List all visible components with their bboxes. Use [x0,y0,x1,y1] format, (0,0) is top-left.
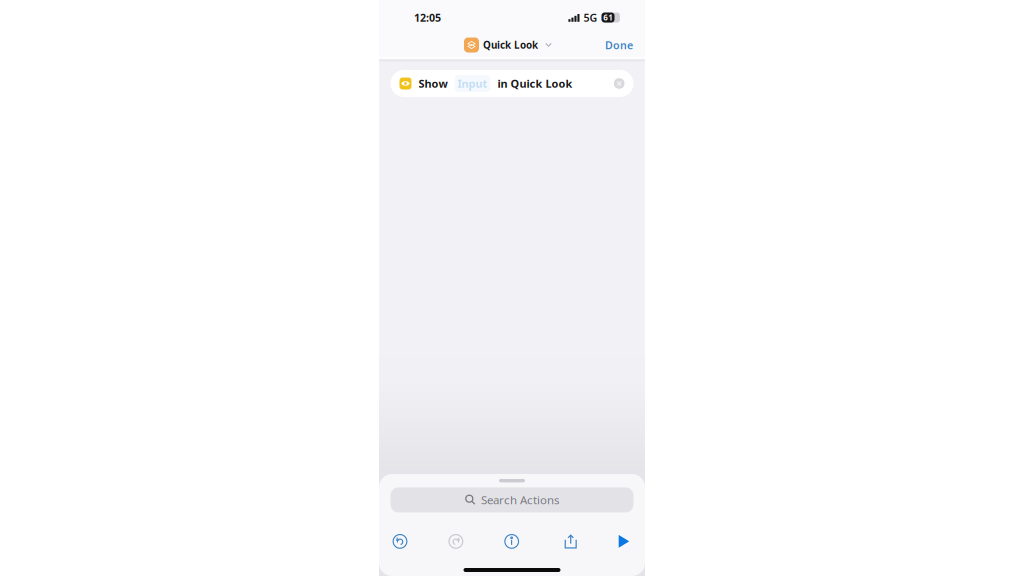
staticText: in Quick Look [497,76,572,91]
button[interactable]: Undo [392,534,407,549]
button[interactable]: Shortcut details [504,534,519,549]
button[interactable]: Quick Look [464,33,552,56]
staticText: Search Actions [481,492,559,508]
button[interactable]: Share [563,534,578,549]
button[interactable]: Search Actions [390,487,633,512]
button[interactable]: Run shortcut [616,534,631,549]
button[interactable]: Done [605,32,645,58]
staticText: Done [605,38,633,52]
staticText: Input [457,76,487,91]
staticText: 61 [603,12,613,23]
button[interactable]: Show [390,70,633,97]
staticText: 12:05 [414,10,441,25]
button[interactable]: Redo [448,534,463,549]
staticText: Quick Look [483,38,538,52]
staticText: Show [418,76,447,91]
staticText: 5G [583,10,597,25]
